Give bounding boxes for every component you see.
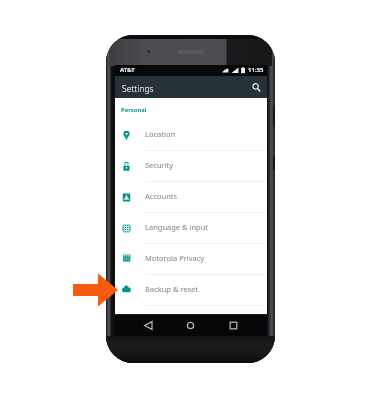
staticText: Personal — [121, 106, 147, 114]
staticText: Language & input — [145, 222, 208, 232]
staticText: Accounts — [145, 191, 178, 201]
button[interactable]: Motorola Privacy — [115, 244, 267, 274]
button[interactable]: Location — [115, 120, 267, 150]
button[interactable]: Home — [184, 319, 197, 332]
button[interactable]: Back — [141, 319, 154, 332]
button[interactable]: Recents — [227, 319, 240, 332]
staticText: Motorola Privacy — [145, 253, 205, 263]
staticText: 11:35 — [248, 66, 264, 74]
button[interactable]: Security — [115, 151, 267, 181]
button[interactable]: Search — [249, 80, 263, 94]
staticText: Location — [145, 129, 176, 139]
staticText: Backup & reset — [145, 284, 199, 294]
staticText: Settings — [122, 83, 154, 95]
staticText: AT&T — [120, 66, 135, 74]
button[interactable]: Backup & reset — [115, 275, 267, 305]
button[interactable]: Accounts — [115, 182, 267, 212]
button[interactable]: Language & input — [115, 213, 267, 243]
staticText: Security — [145, 160, 174, 170]
